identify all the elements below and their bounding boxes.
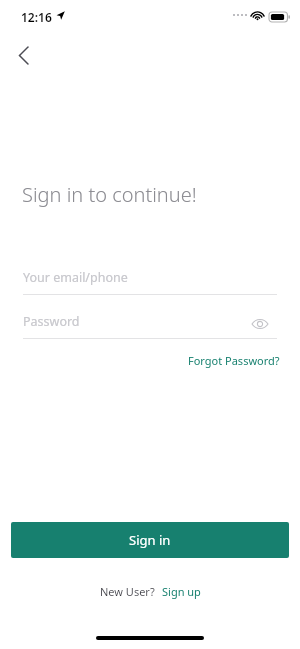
staticText: Sign in: [129, 531, 171, 549]
button[interactable]: Sign up: [162, 584, 201, 599]
staticText: Your email/phone: [23, 269, 128, 286]
staticText: 12:16: [21, 9, 52, 25]
staticText: Sign in to continue!: [22, 181, 197, 208]
button[interactable]: Back: [4, 36, 42, 74]
staticText: Forgot Password?: [188, 353, 280, 368]
button[interactable]: Forgot Password?: [188, 353, 280, 368]
staticText: Password: [23, 313, 80, 330]
button[interactable]: Sign in: [11, 522, 289, 558]
button[interactable]: Your email/phone: [23, 263, 277, 295]
button[interactable]: Show password: [247, 311, 273, 337]
staticText: Sign up: [162, 584, 201, 599]
staticText: New User?: [100, 584, 155, 599]
button[interactable]: Password: [23, 307, 277, 339]
